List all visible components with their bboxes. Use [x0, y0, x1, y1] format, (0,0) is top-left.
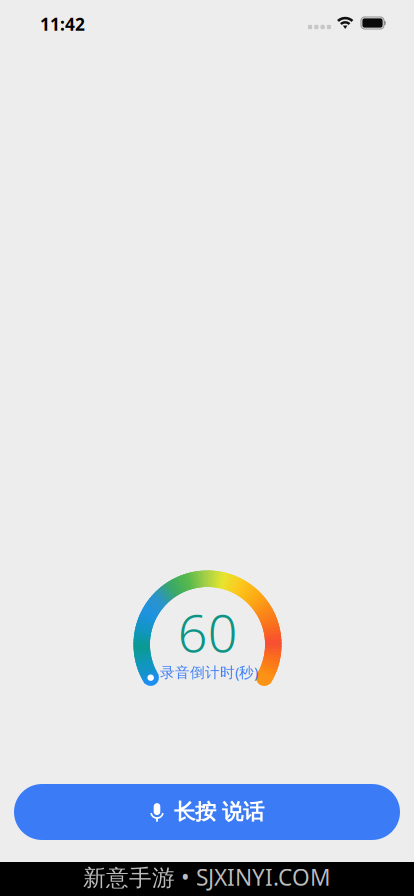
staticText: 录音倒计时(秒) — [160, 662, 258, 682]
staticText: 60 — [178, 597, 238, 667]
staticText: 11:42 — [40, 12, 85, 35]
staticText: 长按 说话 — [174, 799, 264, 825]
button[interactable]: 长按 说话 — [14, 784, 400, 840]
staticText: 新意手游 • SJXINYI.COM — [83, 862, 331, 892]
